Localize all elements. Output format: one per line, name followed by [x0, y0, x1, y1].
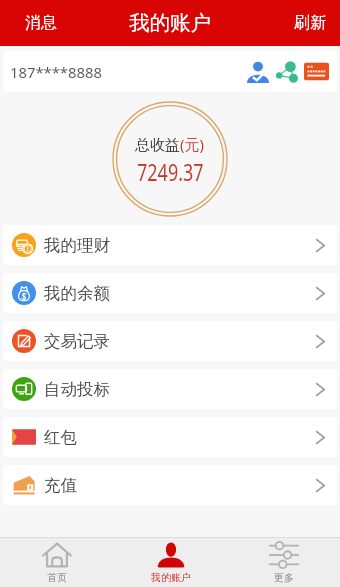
staticText: 消息	[25, 13, 57, 33]
staticText: 187****8888	[10, 62, 102, 82]
button[interactable]: 更多	[227, 538, 340, 587]
button[interactable]: 充值	[3, 465, 337, 505]
staticText: 我的余额	[44, 283, 110, 304]
button[interactable]: Share	[274, 59, 299, 84]
button[interactable]: 刷新	[280, 0, 340, 46]
button[interactable]: 我的账户	[114, 538, 227, 587]
button[interactable]: 自动投标	[3, 369, 337, 409]
staticText: 自动投标	[44, 379, 110, 400]
staticText: 充值	[44, 475, 77, 496]
button[interactable]: Bank card	[303, 58, 330, 85]
staticText: 我的账户	[129, 10, 211, 36]
button[interactable]: Verify identity	[245, 59, 270, 84]
staticText: 更多	[274, 571, 294, 584]
staticText: 红包	[44, 427, 77, 448]
button[interactable]: 消息	[0, 0, 68, 46]
staticText: 7249.37	[137, 156, 204, 189]
button[interactable]: 187****8888	[3, 51, 337, 92]
staticText: 我的账户	[151, 571, 191, 584]
button[interactable]: 首页	[0, 538, 114, 587]
button[interactable]: 我的余额	[3, 273, 337, 313]
button[interactable]: 红包	[3, 417, 337, 457]
staticText: 总收益(元)	[135, 134, 205, 154]
staticText: 首页	[47, 571, 67, 584]
staticText: 我的理财	[44, 235, 110, 256]
staticText: 交易记录	[44, 331, 110, 352]
button[interactable]: 交易记录	[3, 321, 337, 361]
button[interactable]: 我的理财	[3, 225, 337, 265]
staticText: 刷新	[294, 13, 326, 33]
